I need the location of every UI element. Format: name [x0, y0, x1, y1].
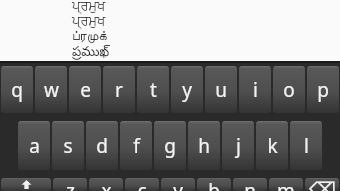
staticText: z — [66, 178, 75, 191]
staticText: u — [215, 77, 227, 103]
button[interactable]: a — [18, 121, 50, 170]
staticText: o — [283, 77, 295, 103]
staticText: l — [304, 133, 309, 159]
button[interactable]: z — [53, 178, 87, 191]
button[interactable]: j — [222, 121, 254, 170]
button[interactable]: g — [154, 121, 186, 170]
button[interactable]: o — [273, 66, 305, 113]
staticText: g — [164, 133, 176, 159]
staticText: r — [115, 77, 123, 103]
button[interactable]: r — [103, 66, 135, 113]
button[interactable]: Shift — [1, 178, 51, 191]
staticText: b — [208, 178, 220, 191]
staticText: j — [236, 133, 241, 159]
staticText: t — [150, 77, 157, 103]
button[interactable]: k — [256, 121, 288, 170]
staticText: i — [253, 77, 258, 103]
button[interactable]: x — [89, 178, 123, 191]
staticText: q — [11, 77, 23, 103]
button[interactable]: f — [120, 121, 152, 170]
button[interactable]: u — [205, 66, 237, 113]
staticText: n — [244, 178, 256, 191]
button[interactable]: b — [197, 178, 231, 191]
staticText: w — [44, 77, 59, 103]
staticText: m — [277, 178, 295, 191]
staticText: ప్రముఖ్ — [72, 45, 110, 60]
staticText: p — [317, 77, 329, 103]
button[interactable]: w — [35, 66, 67, 113]
staticText: ப்ரமுக் — [72, 30, 107, 45]
button[interactable]: y — [171, 66, 203, 113]
button[interactable]: t — [137, 66, 169, 113]
staticText: x — [101, 178, 112, 191]
staticText: a — [29, 133, 40, 159]
staticText: k — [267, 133, 278, 159]
button[interactable]: l — [290, 121, 322, 170]
button[interactable]: s — [52, 121, 84, 170]
button[interactable]: i — [239, 66, 271, 113]
staticText: s — [63, 133, 73, 159]
button[interactable]: v — [161, 178, 195, 191]
button[interactable]: m — [269, 178, 303, 191]
staticText: c — [137, 178, 147, 191]
button[interactable]: c — [125, 178, 159, 191]
staticText: ⌫ — [309, 178, 336, 191]
staticText: ਪ੍ਰਮੁਖ — [72, 15, 106, 30]
staticText: v — [173, 178, 183, 191]
button[interactable]: p — [307, 66, 339, 113]
button[interactable]: d — [86, 121, 118, 170]
button[interactable]: h — [188, 121, 220, 170]
button[interactable]: e — [69, 66, 101, 113]
staticText: e — [80, 77, 91, 103]
staticText: h — [198, 133, 210, 159]
staticText: y — [182, 77, 192, 103]
staticText: f — [133, 133, 140, 159]
staticText: d — [96, 133, 108, 159]
button[interactable]: q — [1, 66, 33, 113]
button[interactable]: n — [233, 178, 267, 191]
staticText: ਪ੍ਰਮੁਖ — [72, 0, 106, 15]
button[interactable]: ⌫ — [305, 178, 339, 191]
